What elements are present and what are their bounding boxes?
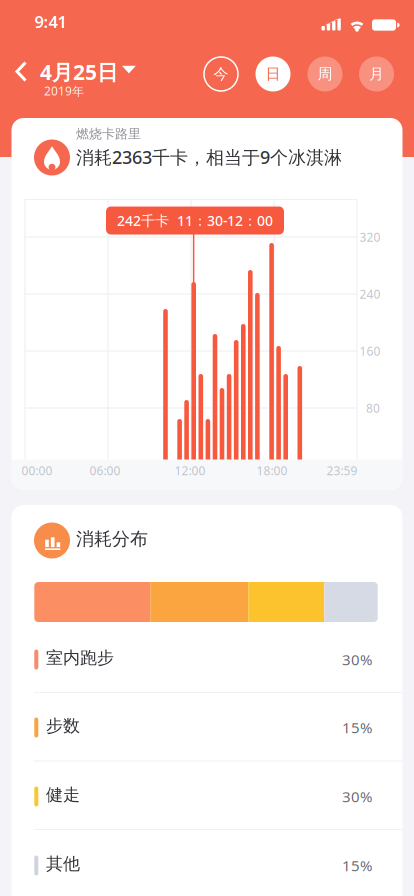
staticText: 室内跑步 <box>46 647 114 668</box>
button[interactable]: Back <box>0 0 414 896</box>
staticText: 23:59 <box>326 462 357 478</box>
staticText: 18:00 <box>256 462 287 478</box>
staticText: 今 <box>213 65 228 83</box>
button[interactable]: 今 <box>199 52 243 96</box>
staticText: 9:41 <box>34 10 66 32</box>
button[interactable]: 日 <box>251 52 295 96</box>
staticText: 月 <box>369 65 384 83</box>
staticText: 30% <box>342 649 372 669</box>
staticText: 步数 <box>46 715 80 736</box>
staticText: 320 <box>359 229 380 245</box>
button[interactable]: 月 <box>354 52 398 96</box>
button[interactable]: 选择日期 <box>0 0 414 896</box>
staticText: 12:00 <box>174 462 205 478</box>
staticText: 242千卡 11：30-12：00 <box>117 211 273 230</box>
staticText: 4月25日 <box>40 58 118 86</box>
staticText: 周 <box>317 65 332 83</box>
staticText: 00:00 <box>21 462 52 478</box>
staticText: 15% <box>342 717 372 737</box>
staticText: 健走 <box>46 784 80 805</box>
staticText: 06:00 <box>89 462 120 478</box>
staticText: 消耗2363千卡，相当于9个冰淇淋 <box>76 145 342 169</box>
staticText: 30% <box>342 786 372 806</box>
staticText: 80 <box>366 400 380 416</box>
staticText: 160 <box>359 343 380 359</box>
staticText: 其他 <box>46 853 80 874</box>
staticText: 15% <box>342 855 372 875</box>
staticText: 2019年 <box>44 83 84 99</box>
staticText: 240 <box>359 286 380 302</box>
staticText: 燃烧卡路里 <box>76 126 141 142</box>
button[interactable]: 周 <box>303 52 347 96</box>
staticText: 消耗分布 <box>76 528 148 550</box>
staticText: 日 <box>265 65 280 83</box>
